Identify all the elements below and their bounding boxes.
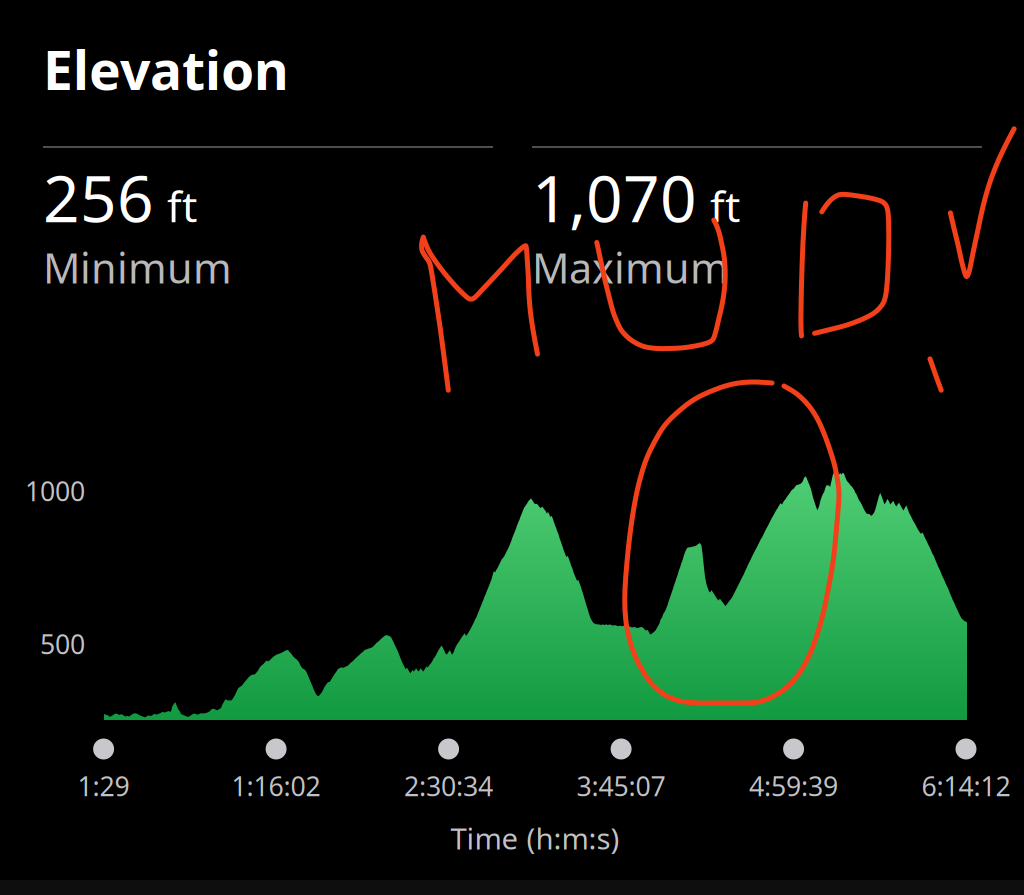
- staticText: 1:16:02: [232, 768, 321, 804]
- staticText: Minimum: [43, 240, 232, 295]
- staticText: 256: [43, 155, 154, 240]
- staticText: 4:59:39: [749, 768, 838, 804]
- staticText: 1000: [25, 473, 85, 509]
- staticText: Elevation: [43, 34, 289, 105]
- staticText: ft: [167, 177, 197, 234]
- staticText: 6:14:12: [921, 768, 1010, 804]
- staticText: 2:30:34: [404, 768, 493, 804]
- staticText: 1:29: [78, 768, 130, 804]
- staticText: 1,070: [532, 155, 697, 240]
- staticText: ft: [710, 177, 740, 234]
- button[interactable]: Elevation chart: [104, 466, 967, 720]
- staticText: Time (h:m:s): [450, 818, 619, 857]
- button[interactable]: 256: [43, 146, 493, 295]
- button[interactable]: 1,070: [532, 146, 982, 295]
- staticText: Maximum: [532, 240, 729, 295]
- staticText: 3:45:07: [577, 768, 666, 804]
- staticText: 500: [40, 626, 85, 662]
